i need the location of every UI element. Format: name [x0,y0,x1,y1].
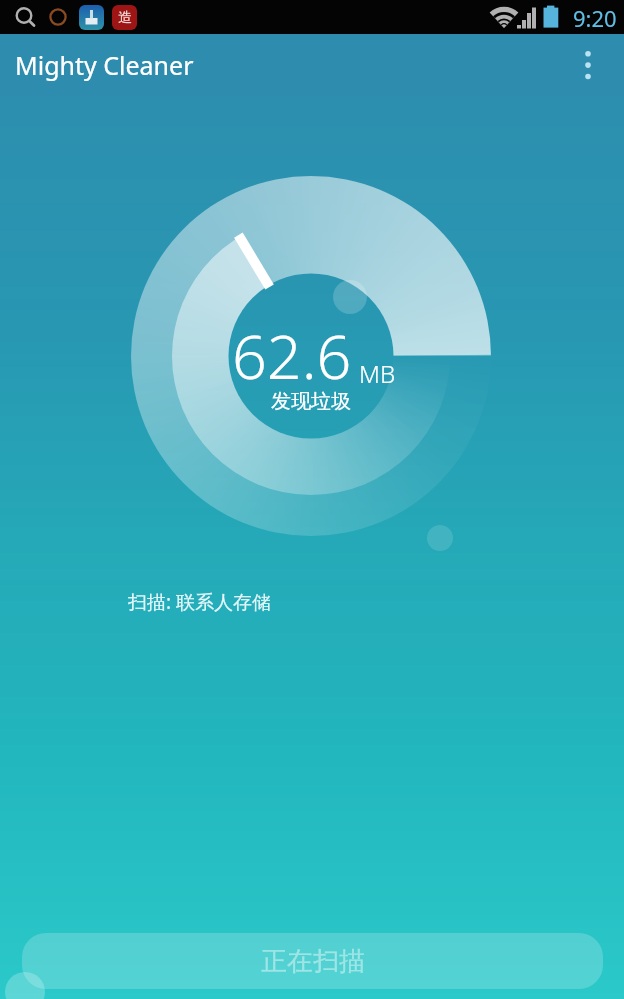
staticText: 62.6 [232,314,352,397]
button[interactable]: 正在扫描 [22,933,603,989]
button[interactable]: More options [564,34,620,96]
staticText: 正在扫描 [261,945,365,978]
staticText: 造 [118,9,132,27]
staticText: 9:20 [573,3,617,33]
staticText: 发现垃圾 [271,389,351,414]
staticText: 扫描: 联系人存储 [128,589,272,615]
staticText: Mighty Cleaner [15,48,194,82]
staticText: MB [359,357,396,390]
